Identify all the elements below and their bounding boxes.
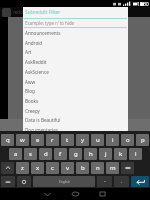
staticText: t — [66, 136, 69, 144]
button[interactable]: u — [91, 134, 104, 146]
button[interactable]: r — [46, 134, 59, 146]
staticText: p — [141, 136, 145, 144]
staticText: x — [36, 164, 40, 172]
staticText: . — [121, 178, 123, 185]
staticText: l — [135, 150, 137, 158]
button[interactable]: b — [76, 162, 89, 174]
button[interactable]: Creepy — [23, 106, 128, 116]
button[interactable]: a — [9, 148, 22, 160]
button[interactable]: x — [31, 162, 44, 174]
button[interactable]: i — [106, 134, 119, 146]
button[interactable]: m — [106, 162, 119, 174]
staticText: w — [20, 136, 25, 144]
button[interactable]: q — [1, 134, 14, 146]
staticText: Data is Beautiful — [25, 117, 61, 123]
staticText: h — [89, 150, 93, 158]
staticText: Example: type r/ to hide — [25, 20, 75, 26]
button[interactable]: Back — [34, 188, 61, 200]
button[interactable]: d — [39, 148, 52, 160]
staticText: AskScience — [25, 69, 49, 75]
button[interactable]: AskReddit — [23, 57, 128, 67]
button[interactable]: Home — [61, 188, 89, 200]
staticText: Aww — [25, 79, 36, 85]
staticText: Books — [25, 98, 39, 104]
button[interactable]: l — [129, 148, 142, 160]
staticText: j — [105, 150, 107, 158]
staticText: Announcements — [25, 30, 61, 36]
staticText: a — [14, 150, 18, 158]
staticText: z — [21, 164, 24, 172]
staticText: o — [126, 136, 130, 144]
button[interactable]: Blog — [23, 86, 128, 96]
staticText: 12:30 — [137, 1, 149, 7]
button[interactable]: e — [31, 134, 44, 146]
staticText: k — [119, 150, 123, 158]
staticText: e — [36, 136, 40, 144]
staticText: Creepy — [25, 108, 40, 114]
button[interactable]: v — [61, 162, 74, 174]
staticText: f — [59, 150, 62, 158]
button[interactable]: k — [114, 148, 127, 160]
button[interactable]: f — [54, 148, 67, 160]
staticText: - — [104, 178, 106, 185]
button[interactable]: y — [76, 134, 89, 146]
button[interactable]: Enter — [131, 176, 149, 187]
button[interactable]: g — [69, 148, 82, 160]
button[interactable]: English — [33, 176, 95, 187]
staticText: s — [29, 150, 32, 158]
staticText: AskReddit — [25, 59, 47, 65]
button[interactable]: Symbols — [1, 176, 15, 187]
staticText: Blog — [25, 88, 35, 94]
button[interactable]: Art — [23, 47, 128, 57]
staticText: i — [112, 136, 114, 144]
staticText: English — [59, 180, 70, 184]
staticText: d — [44, 150, 48, 158]
staticText: r — [51, 136, 54, 144]
staticText: u — [96, 136, 100, 144]
button[interactable]: Data is Beautiful — [23, 115, 128, 125]
button[interactable]: App icon — [2, 8, 11, 17]
button[interactable]: h — [84, 148, 97, 160]
staticText: Art — [25, 49, 32, 55]
button[interactable]: Documentaries — [23, 125, 128, 135]
button[interactable]: Android — [23, 38, 128, 48]
button[interactable]: c — [46, 162, 59, 174]
staticText: m — [110, 164, 116, 172]
staticText: Subreddit Filter — [25, 9, 61, 16]
staticText: g — [74, 150, 78, 158]
button[interactable]: Aww — [23, 77, 128, 87]
button[interactable]: AskScience — [23, 67, 128, 77]
staticText: b — [81, 164, 85, 172]
staticText: Android — [25, 40, 43, 46]
staticText: y — [81, 136, 85, 144]
button[interactable]: j — [99, 148, 112, 160]
button[interactable]: o — [121, 134, 134, 146]
staticText: Documentaries — [25, 127, 59, 133]
button[interactable]: Backspace — [121, 162, 134, 174]
staticText: v — [66, 164, 70, 172]
staticText: reddit — [13, 9, 26, 15]
staticText: q — [6, 136, 10, 144]
button[interactable]: Shift — [1, 162, 14, 174]
staticText: n — [96, 164, 100, 172]
button[interactable]: . — [114, 176, 129, 187]
button[interactable]: Announcements — [23, 28, 128, 38]
button[interactable]: w — [16, 134, 29, 146]
button[interactable]: s — [24, 148, 37, 160]
staticText: c — [51, 164, 54, 172]
button[interactable]: p — [136, 134, 149, 146]
button[interactable]: Recents — [89, 188, 116, 200]
button[interactable]: Emoji — [17, 176, 31, 187]
button[interactable]: n — [91, 162, 104, 174]
button[interactable]: z — [16, 162, 29, 174]
button[interactable]: - — [97, 176, 112, 187]
button[interactable]: Books — [23, 96, 128, 106]
button[interactable]: t — [61, 134, 74, 146]
